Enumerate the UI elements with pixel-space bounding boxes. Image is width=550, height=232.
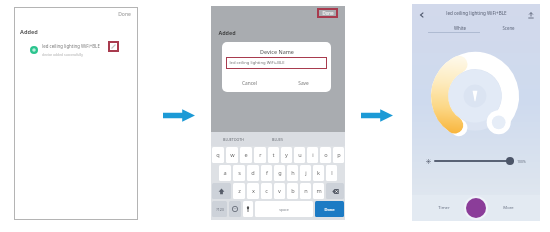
button[interactable]: Save [276, 76, 331, 90]
button[interactable]: Shift [212, 183, 231, 199]
button[interactable]: l [326, 165, 337, 181]
button[interactable]: s [233, 165, 245, 181]
button[interactable]: u [294, 147, 305, 163]
button[interactable]: c [261, 183, 272, 199]
button[interactable]: x [247, 183, 259, 199]
button[interactable]: BLUES [255, 132, 300, 146]
button[interactable]: Scene [490, 23, 526, 33]
staticText: m [316, 187, 322, 195]
button[interactable]: led ceiling lighting WiFi+BLE [226, 57, 327, 69]
button[interactable]: t [268, 147, 279, 163]
button[interactable]: g [274, 165, 285, 181]
staticText: Device Name [260, 48, 294, 55]
button[interactable]: led ceiling lighting WiFi+BLE [14, 40, 138, 60]
staticText: z [238, 187, 241, 195]
button[interactable]: Voice input [243, 201, 253, 217]
button[interactable]: o [320, 147, 331, 163]
staticText: y [285, 151, 288, 159]
staticText: f [266, 169, 268, 177]
button[interactable]: n [300, 183, 311, 199]
staticText: Added [218, 29, 236, 36]
button[interactable]: k [313, 165, 324, 181]
button[interactable]: Power [466, 198, 486, 218]
staticText: t [272, 151, 275, 159]
button[interactable]: Backspace [326, 183, 344, 199]
staticText: l [331, 169, 333, 177]
button[interactable]: b [287, 183, 298, 199]
staticText: BLUES [272, 137, 283, 142]
staticText: Done [322, 10, 334, 16]
button[interactable]: h [287, 165, 298, 181]
staticText: s [238, 169, 241, 177]
button[interactable]: i [307, 147, 318, 163]
staticText: 100% [517, 159, 526, 164]
button[interactable]: y [281, 147, 292, 163]
staticText: q [216, 151, 220, 159]
button[interactable]: Emoji [229, 201, 241, 217]
staticText: k [317, 169, 320, 177]
staticText: Added [20, 28, 38, 36]
staticText: Done [324, 207, 335, 212]
button[interactable]: space [255, 201, 313, 217]
button[interactable]: Done [317, 8, 338, 18]
button[interactable]: v [274, 183, 285, 199]
button[interactable]: Cancel [222, 76, 276, 90]
staticText: h [291, 169, 295, 177]
staticText: BLUETOOTH [223, 137, 244, 142]
staticText: led ceiling lighting WiFi+BLE [229, 60, 285, 66]
button[interactable]: More [488, 195, 528, 221]
staticText: g [278, 169, 282, 177]
button[interactable]: Done [114, 9, 134, 19]
button[interactable]: e [240, 147, 252, 163]
staticText: n [304, 187, 308, 195]
button[interactable]: j [300, 165, 311, 181]
staticText: o [324, 151, 328, 159]
staticText: led ceiling lighting WiFi+BLE [42, 43, 100, 49]
button[interactable]: m [313, 183, 324, 199]
staticText: ?123 [216, 207, 224, 212]
staticText: w [230, 151, 235, 159]
staticText: space [279, 207, 289, 212]
staticText: p [337, 151, 341, 159]
staticText: Timer [438, 205, 450, 211]
staticText: Cancel [242, 80, 257, 87]
staticText: b [291, 187, 295, 195]
button[interactable]: p [333, 147, 344, 163]
staticText: led ceiling lighting WiFi+BLE [446, 10, 507, 16]
button[interactable]: Brightness [506, 157, 514, 165]
button[interactable]: f [261, 165, 272, 181]
staticText: More [503, 205, 514, 211]
staticText: r [259, 151, 262, 159]
staticText: e [244, 151, 248, 159]
staticText: Done [118, 11, 131, 18]
button[interactable]: r [254, 147, 266, 163]
staticText: White [454, 25, 466, 31]
button[interactable]: Done [315, 201, 344, 217]
button[interactable]: BLUETOOTH [211, 132, 255, 146]
button[interactable]: White [442, 23, 478, 33]
button[interactable]: z [233, 183, 245, 199]
staticText: a [223, 169, 227, 177]
button[interactable]: d [247, 165, 259, 181]
button[interactable]: q [212, 147, 224, 163]
button[interactable]: a [219, 165, 231, 181]
button[interactable]: Back [416, 9, 428, 21]
staticText: i [312, 151, 314, 159]
staticText: Scene [502, 25, 515, 31]
button[interactable]: ?123 [212, 201, 227, 217]
staticText: c [265, 187, 268, 195]
staticText: Save [298, 80, 309, 87]
staticText: u [298, 151, 302, 159]
staticText: j [305, 169, 307, 177]
staticText: x [252, 187, 255, 195]
staticText: v [278, 187, 281, 195]
button[interactable]: Timer [424, 195, 464, 221]
button[interactable]: w [226, 147, 238, 163]
button[interactable]: Edit device name [108, 41, 119, 52]
staticText: d [251, 169, 255, 177]
staticText: device added successfully [42, 52, 83, 57]
button[interactable]: Share [525, 9, 537, 21]
